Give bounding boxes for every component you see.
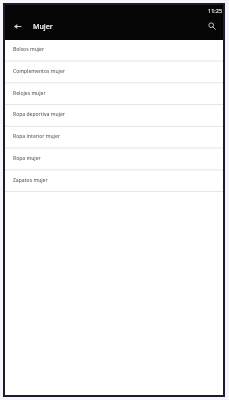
staticText: Mujer <box>33 22 53 32</box>
staticText: Ropa deportiva mujer <box>13 111 65 118</box>
staticText: Zapatos mujer <box>13 177 48 184</box>
button[interactable]: Zapatos mujer <box>5 171 223 193</box>
button[interactable]: Complementos mujer <box>5 62 223 84</box>
button[interactable]: Ropa interior mujer <box>5 127 223 149</box>
staticText: Relojes mujer <box>13 90 46 97</box>
staticText: Complementos mujer <box>13 68 65 75</box>
staticText: 11:25 <box>208 7 223 14</box>
staticText: Ropa interior mujer <box>13 133 60 140</box>
button[interactable]: Bolsos mujer <box>5 40 223 62</box>
staticText: Ropa mujer <box>13 155 41 162</box>
button[interactable]: Ropa mujer <box>5 149 223 171</box>
staticText: Bolsos mujer <box>13 46 45 53</box>
button[interactable]: Relojes mujer <box>5 84 223 106</box>
button[interactable]: Back <box>7 15 28 38</box>
button[interactable]: Search <box>201 15 223 36</box>
button[interactable]: Ropa deportiva mujer <box>5 105 223 127</box>
